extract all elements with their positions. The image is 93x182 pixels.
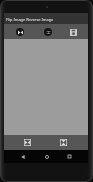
button[interactable]: Save	[69, 28, 77, 36]
staticText: Flip Image Reverse Image	[6, 17, 54, 22]
button[interactable]: Flip horizontal	[16, 28, 24, 36]
button[interactable]: Recent apps	[64, 151, 75, 162]
button[interactable]: Back	[17, 151, 28, 162]
button[interactable]: Home	[41, 151, 52, 162]
button[interactable]: Flip vertical	[44, 28, 52, 36]
button[interactable]: Flip vertical	[60, 139, 67, 146]
button[interactable]: Flip horizontal	[24, 139, 31, 146]
